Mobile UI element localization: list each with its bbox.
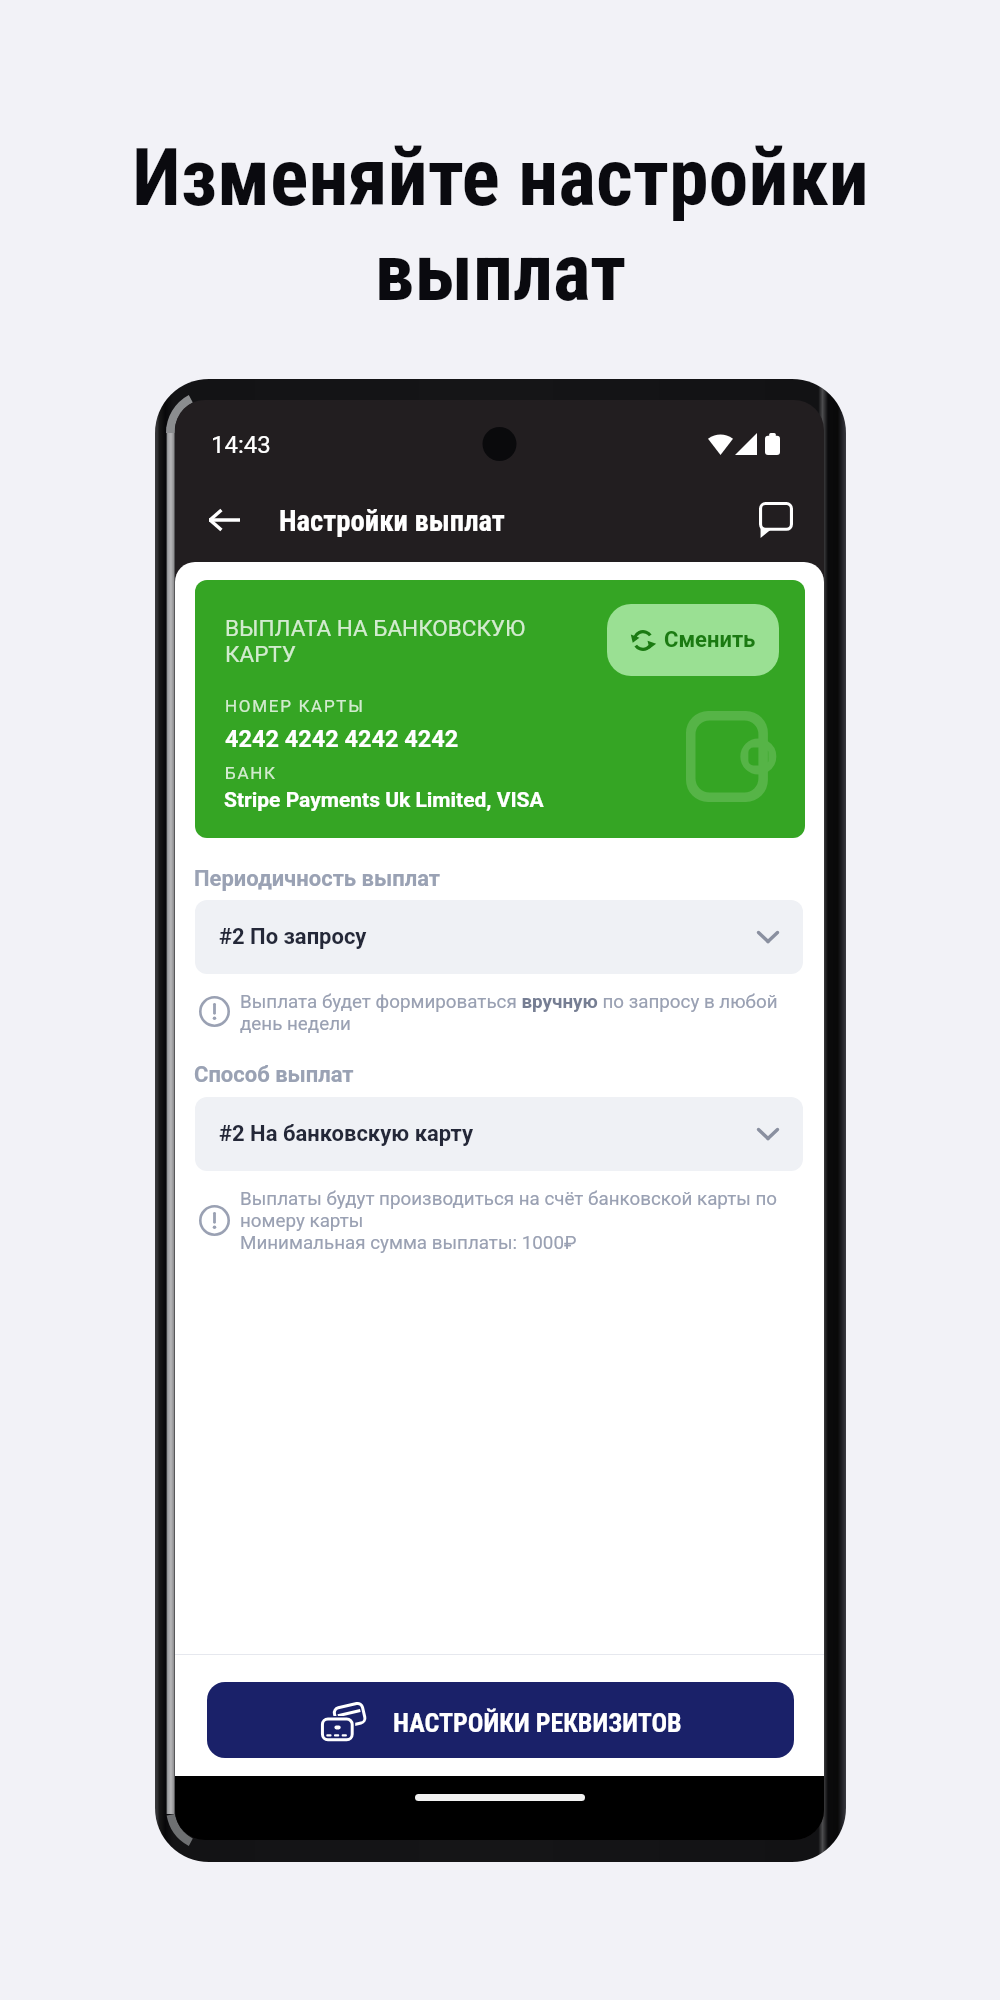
staticText: Выплаты будут производиться на счёт банк…	[240, 1188, 778, 1254]
staticText: Способ выплат	[194, 1062, 354, 1088]
staticText: #2 По запросу	[219, 924, 367, 950]
staticText: ВЫПЛАТА НА БАНКОВСКУЮ КАРТУ	[225, 615, 526, 667]
staticText: Stripe Payments Uk Limited, VISA	[224, 788, 544, 813]
staticText: 14:43	[211, 431, 271, 459]
staticText: НОМЕР КАРТЫ	[225, 696, 365, 716]
button[interactable]: НАСТРОЙКИ РЕКВИЗИТОВ	[207, 1682, 794, 1758]
staticText: НАСТРОЙКИ РЕКВИЗИТОВ	[393, 1708, 682, 1738]
staticText: Периодичность выплат	[194, 866, 441, 892]
button[interactable]: #2 По запросу	[195, 900, 803, 974]
staticText: Изменяйте настройки выплат	[132, 131, 869, 320]
staticText: #2 На банковскую карту	[219, 1121, 473, 1147]
staticText: Сменить	[664, 627, 756, 653]
staticText: БАНК	[225, 763, 277, 783]
button[interactable]: Back	[193, 489, 255, 551]
button[interactable]: #2 На банковскую карту	[195, 1097, 803, 1171]
button[interactable]: Сменить	[607, 604, 779, 676]
staticText: Настройки выплат	[279, 504, 505, 538]
button[interactable]: Chat	[745, 489, 807, 551]
staticText: 4242 4242 4242 4242	[225, 725, 459, 753]
staticText: Выплата будет формироваться вручную по з…	[240, 991, 778, 1035]
